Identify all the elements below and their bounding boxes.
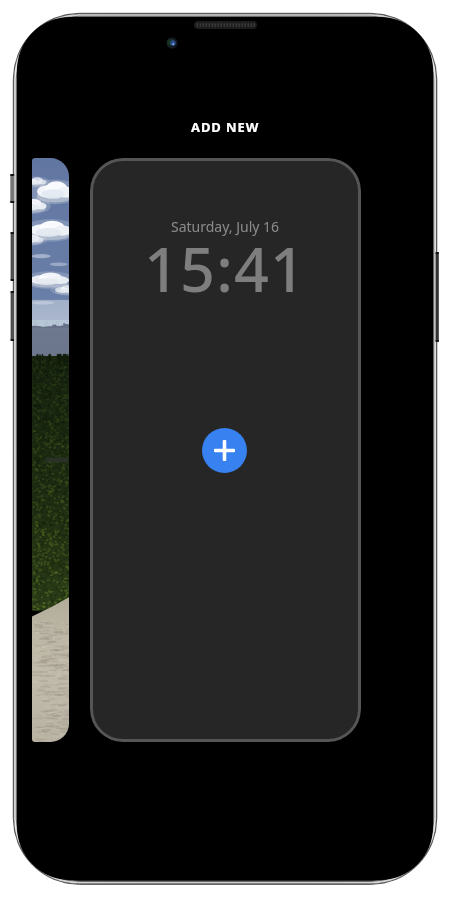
button[interactable]: Add new wallpaper — [202, 428, 247, 473]
staticText: ADD NEW — [191, 118, 260, 136]
button[interactable] — [32, 158, 69, 742]
staticText: Saturday, July 16 — [171, 217, 280, 236]
button[interactable]: Saturday, July 16 — [90, 158, 361, 742]
button[interactable]: ADD NEW — [17, 118, 433, 136]
staticText: 15:41 — [144, 227, 307, 310]
